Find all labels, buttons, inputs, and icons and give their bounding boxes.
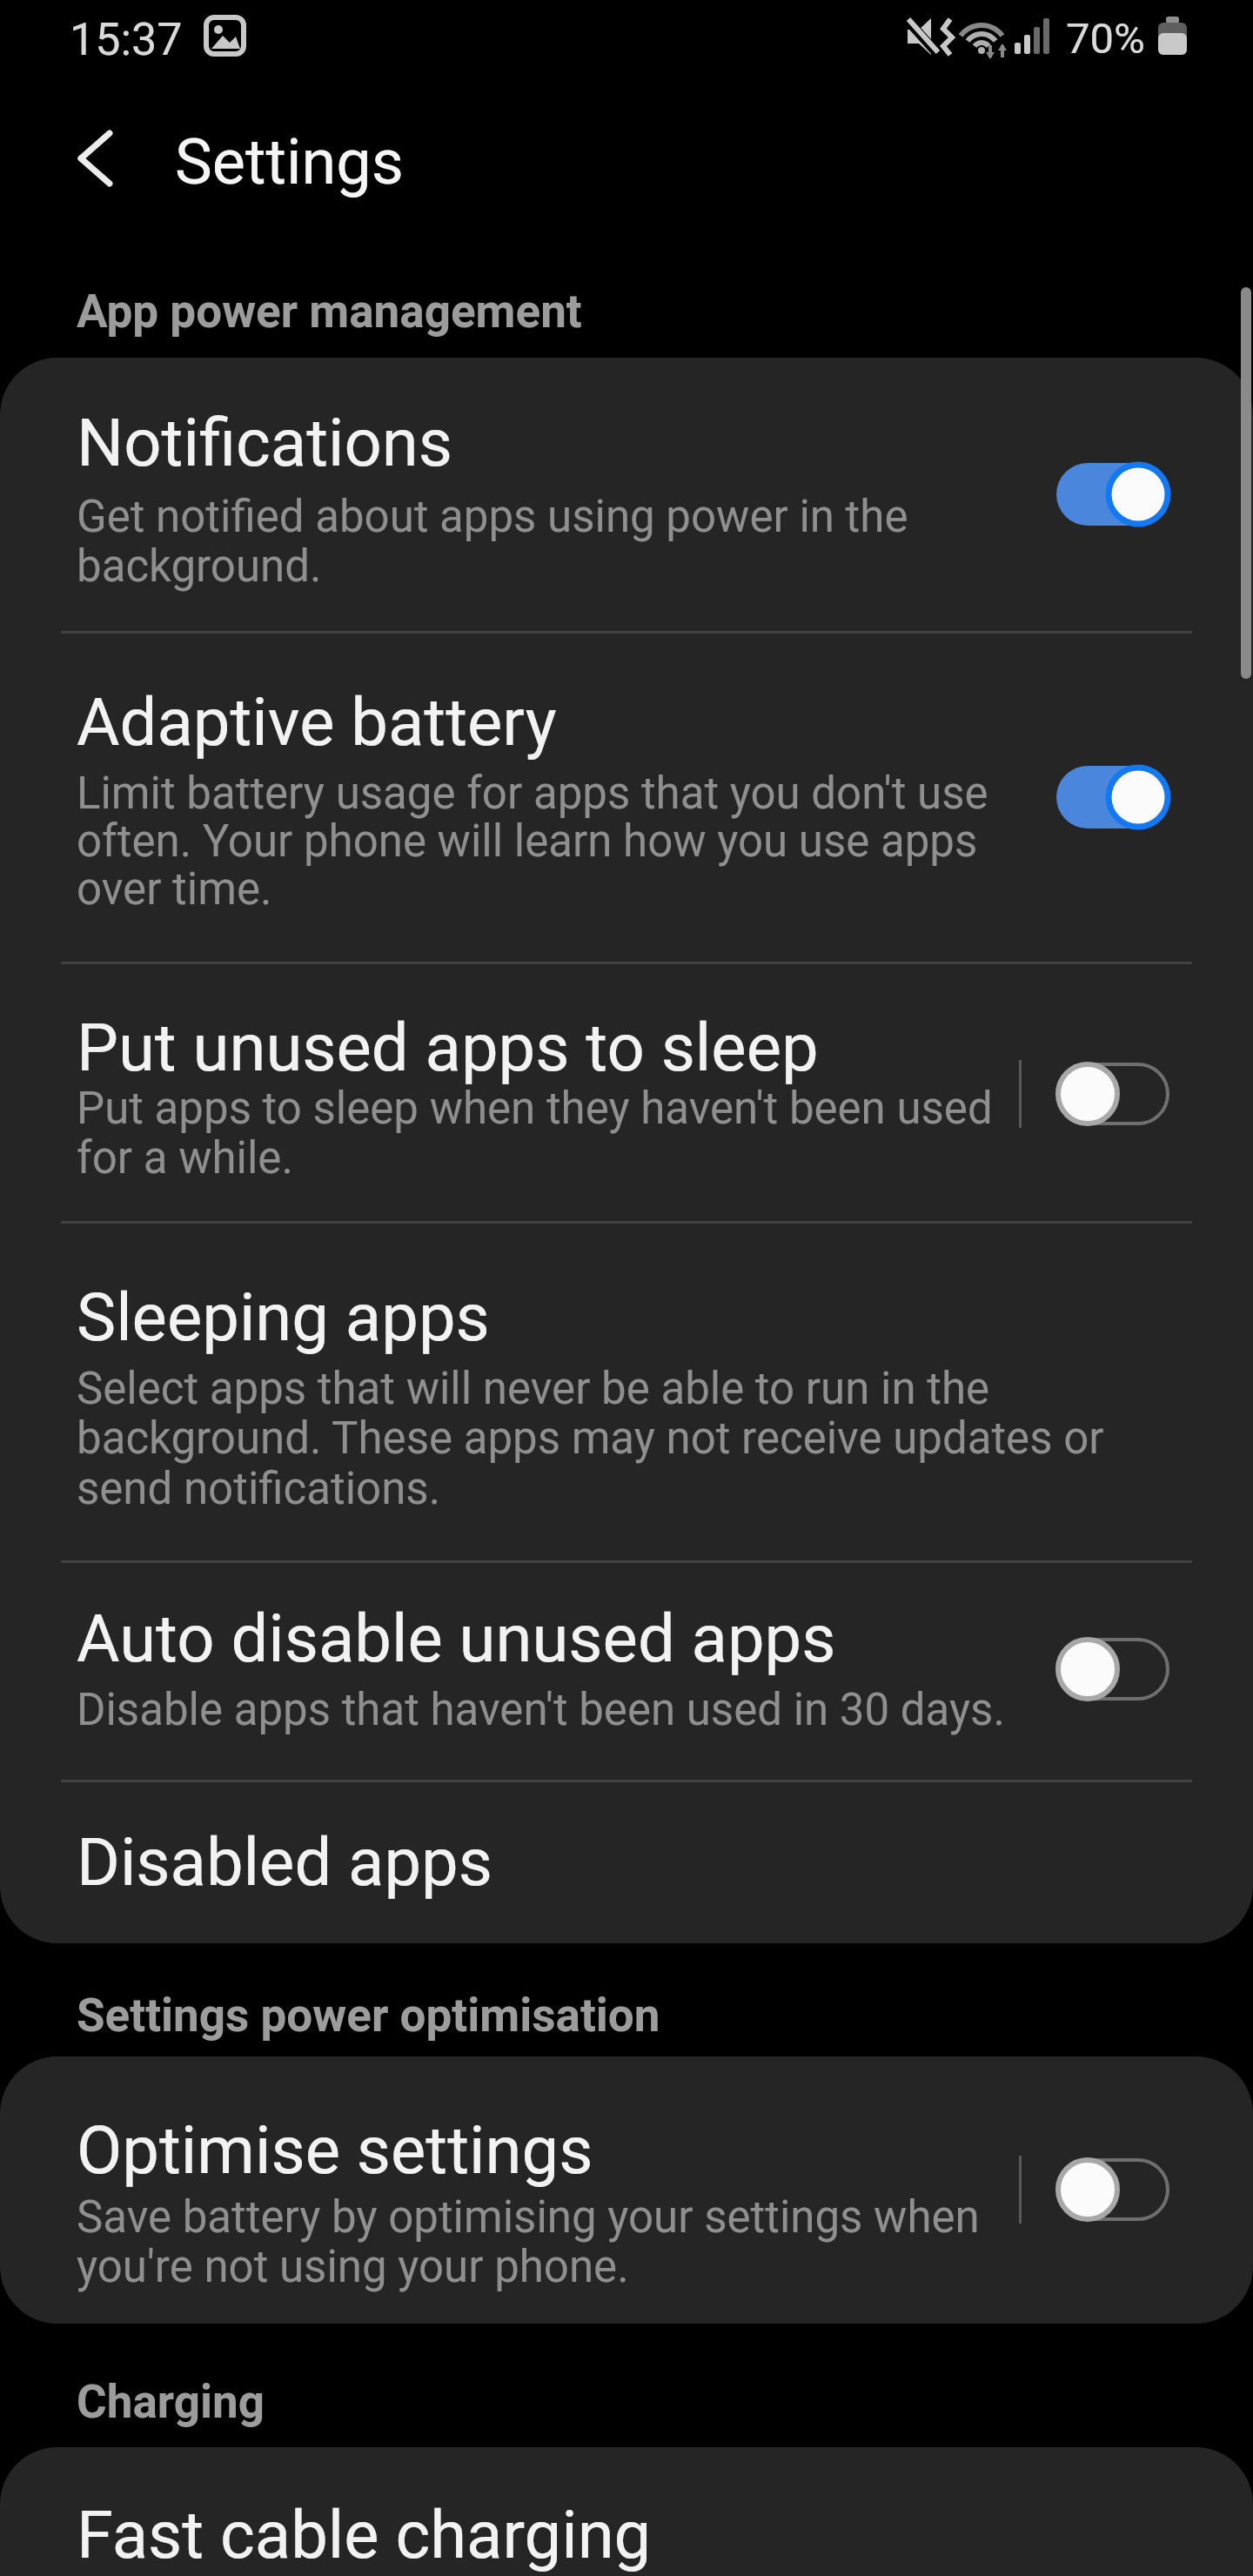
staticText: Disable apps that haven't been used in 3… (77, 1684, 1005, 1736)
staticText: over time. (77, 863, 272, 916)
staticText: often. Your phone will learn how you use… (77, 815, 978, 868)
staticText: App power management (77, 285, 582, 339)
button[interactable] (1056, 1061, 1173, 1127)
staticText: Charging (77, 2375, 265, 2429)
staticText: 15:37 (70, 13, 183, 66)
staticText: Save battery by optimising your settings… (77, 2191, 980, 2244)
staticText: send notifications. (77, 1463, 441, 1515)
button[interactable]: Fast cable charging (0, 2447, 1253, 2576)
button[interactable]: Optimise settings (0, 2056, 1253, 2324)
button[interactable] (1056, 1636, 1173, 1702)
button[interactable]: Auto disable unused apps (0, 1563, 1253, 1780)
staticText: Settings power optimisation (77, 1989, 660, 2043)
staticText: Settings (175, 125, 404, 198)
staticText: 70% (1066, 14, 1145, 64)
button[interactable]: Sleeping apps (0, 1224, 1253, 1560)
staticText: Disabled apps (77, 1823, 493, 1901)
staticText: Put unused apps to sleep (77, 1009, 819, 1086)
button[interactable] (1056, 2157, 1173, 2223)
staticText: Adaptive battery (77, 683, 557, 761)
staticText: you're not using your phone. (77, 2241, 629, 2293)
button[interactable]: Disabled apps (0, 1782, 1253, 1943)
staticText: Get notified about apps using power in t… (77, 491, 908, 543)
staticText: Sleeping apps (77, 1278, 490, 1356)
staticText: Optimise settings (77, 2111, 593, 2189)
button[interactable] (35, 104, 157, 218)
button[interactable]: Adaptive battery (0, 634, 1253, 962)
staticText: Put apps to sleep when they haven't been… (77, 1083, 993, 1135)
button[interactable] (1056, 461, 1173, 527)
staticText: Notifications (77, 404, 453, 481)
staticText: Fast cable charging (77, 2496, 652, 2573)
button[interactable] (1056, 764, 1173, 830)
staticText: background. These apps may not receive u… (77, 1412, 1104, 1465)
staticText: background. (77, 540, 322, 593)
staticText: for a while. (77, 1132, 293, 1184)
button[interactable]: Put unused apps to sleep (0, 964, 1253, 1221)
button[interactable]: Notifications (0, 358, 1253, 631)
staticText: Auto disable unused apps (77, 1600, 836, 1677)
staticText: Limit battery usage for apps that you do… (77, 768, 988, 820)
staticText: Select apps that will never be able to r… (77, 1363, 990, 1415)
